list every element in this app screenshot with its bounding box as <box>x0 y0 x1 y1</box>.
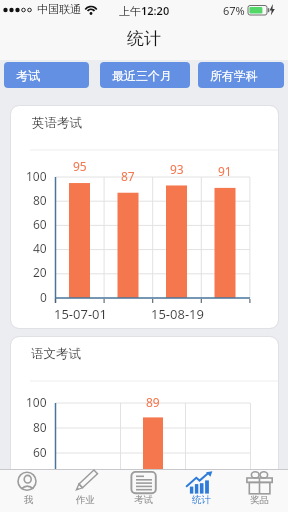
staticText: 67% <box>223 3 245 18</box>
button[interactable]: 统计 <box>172 469 230 512</box>
staticText: 统计 <box>127 28 161 49</box>
staticText: 奖品 <box>250 494 269 506</box>
staticText: 考试 <box>16 68 40 83</box>
staticText: 最近三个月 <box>112 68 172 83</box>
staticText: 20 <box>33 264 47 280</box>
staticText: 95 <box>73 158 87 174</box>
staticText: 0 <box>40 289 47 305</box>
staticText: 89 <box>146 394 160 410</box>
button[interactable]: 考试 <box>4 62 89 88</box>
button[interactable]: 考试 <box>114 469 172 512</box>
button[interactable]: 所有学科 <box>198 62 284 88</box>
staticText: 60 <box>33 216 47 232</box>
staticText: 语文考试 <box>31 346 81 362</box>
staticText: 87 <box>121 168 135 184</box>
staticText: 所有学科 <box>210 68 258 83</box>
staticText: 80 <box>33 419 47 435</box>
staticText: 中国联通 <box>37 2 81 16</box>
staticText: 93 <box>170 161 184 177</box>
staticText: 100 <box>26 394 47 410</box>
staticText: 作业 <box>76 494 95 506</box>
staticText: 考试 <box>134 494 153 506</box>
staticText: 60 <box>33 444 47 460</box>
staticText: 91 <box>218 163 232 179</box>
button[interactable]: 奖品 <box>230 469 288 512</box>
staticText: 15-07-01 <box>54 305 107 323</box>
staticText: 上午12:20 <box>119 3 170 18</box>
staticText: 80 <box>33 192 47 208</box>
staticText: 15-08-19 <box>151 305 204 323</box>
staticText: 100 <box>26 168 47 184</box>
button[interactable]: 作业 <box>57 469 114 512</box>
staticText: 我 <box>24 494 34 506</box>
button[interactable]: 最近三个月 <box>100 62 190 88</box>
staticText: 英语考试 <box>32 115 82 131</box>
staticText: 40 <box>33 240 47 256</box>
staticText: 统计 <box>192 494 211 506</box>
button[interactable]: 我 <box>0 469 57 512</box>
